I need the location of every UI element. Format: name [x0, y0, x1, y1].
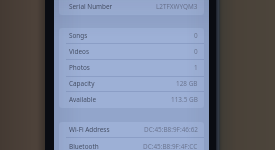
button[interactable]: Wi-Fi Address	[59, 122, 204, 138]
staticText: Videos	[69, 47, 89, 56]
staticText: Photos	[69, 63, 90, 72]
staticText: DC:45:B8:9F:4F:CC	[143, 142, 198, 150]
button[interactable]: Videos	[59, 44, 204, 60]
staticText: Available	[69, 95, 96, 104]
button[interactable]: Serial Number	[59, 0, 204, 15]
staticText: DC:45:B8:9F:46:62	[144, 125, 198, 134]
staticText: Songs	[69, 31, 88, 40]
staticText: 113.5 GB	[171, 95, 198, 104]
staticText: 0	[194, 31, 198, 40]
button[interactable]: Photos	[59, 60, 204, 76]
button[interactable]: Bluetooth	[59, 138, 204, 150]
staticText: 128 GB	[176, 79, 198, 88]
button[interactable]: Capacity	[59, 76, 204, 92]
button[interactable]: Available	[59, 92, 204, 108]
staticText: 1	[194, 63, 198, 72]
staticText: 0	[194, 47, 198, 56]
staticText: L2TFXWYQM3	[156, 2, 198, 11]
button[interactable]: Songs	[59, 28, 204, 44]
staticText: Serial Number	[69, 2, 113, 11]
staticText: Wi-Fi Address	[69, 125, 110, 134]
staticText: Bluetooth	[69, 142, 99, 150]
staticText: Capacity	[69, 79, 95, 88]
